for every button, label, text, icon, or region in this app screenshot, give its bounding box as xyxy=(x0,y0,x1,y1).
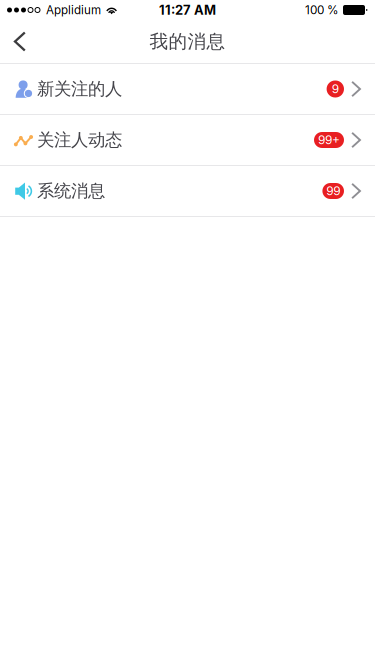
staticText: 100 % xyxy=(305,3,339,17)
staticText: 99+ xyxy=(318,133,340,147)
staticText: 新关注的人 xyxy=(37,78,122,100)
button[interactable]: 系统消息 xyxy=(0,166,375,217)
button[interactable]: 新关注的人 xyxy=(0,64,375,115)
staticText: 11:27 AM xyxy=(159,2,216,18)
staticText: 99 xyxy=(326,184,340,198)
button[interactable]: 关注人动态 xyxy=(0,115,375,166)
staticText: 9 xyxy=(332,82,339,96)
staticText: 系统消息 xyxy=(37,180,105,202)
staticText: Applidium xyxy=(46,3,101,17)
staticText: 我的消息 xyxy=(149,30,225,53)
staticText: 关注人动态 xyxy=(37,129,122,151)
button[interactable]: Back xyxy=(0,20,44,63)
